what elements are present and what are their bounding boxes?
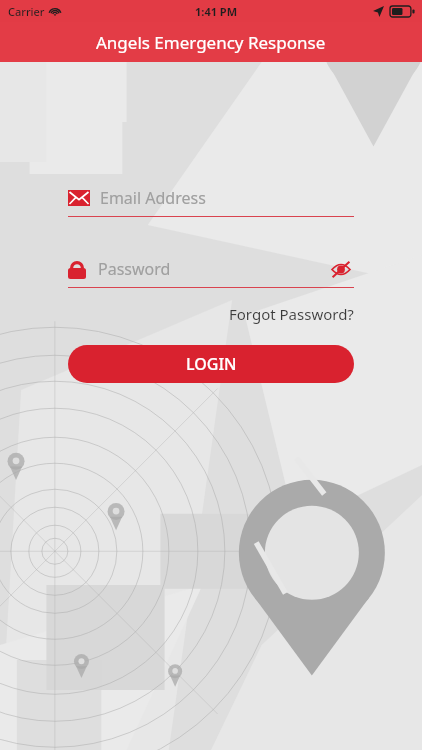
button[interactable]: Forgot Password? — [229, 302, 354, 326]
staticText: Carrier — [8, 4, 45, 19]
staticText: Angels Emergency Response — [96, 31, 326, 54]
staticText: 1:41 PM — [195, 4, 238, 19]
button[interactable]: LOGIN — [68, 345, 354, 383]
button[interactable]: Password — [68, 255, 354, 283]
staticText: LOGIN — [186, 353, 237, 375]
button[interactable]: Email Address — [68, 184, 354, 212]
button[interactable]: Show password — [328, 256, 354, 282]
staticText: Email Address — [100, 187, 206, 209]
staticText: Password — [98, 258, 171, 280]
staticText: Forgot Password? — [229, 304, 354, 324]
